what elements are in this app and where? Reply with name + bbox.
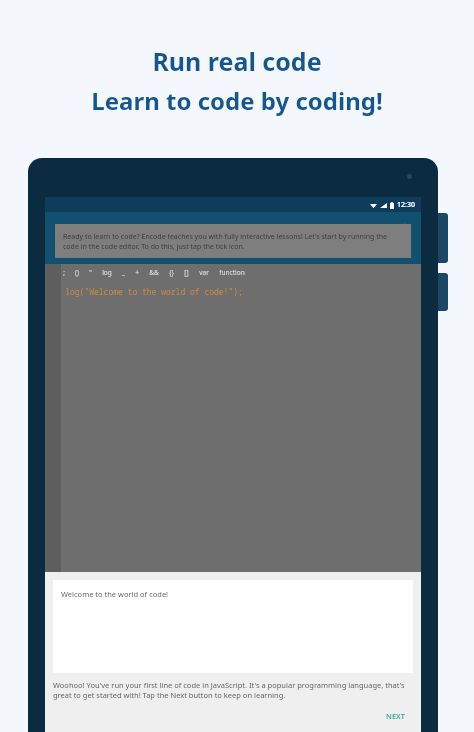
button[interactable]: Back <box>52 216 74 238</box>
staticText: " <box>89 268 92 277</box>
button[interactable]: var <box>199 268 209 277</box>
staticText: Lesson <box>81 220 117 235</box>
staticText: + <box>135 268 139 277</box>
button[interactable]: NEXT <box>378 708 413 724</box>
staticText: ; <box>63 268 65 277</box>
button[interactable]: log <box>102 268 112 277</box>
staticText: && <box>149 268 159 277</box>
button[interactable]: function <box>219 268 245 277</box>
staticText: Welcome to the world of code! <box>61 589 169 599</box>
staticText: Learn to code by coding! <box>91 84 383 117</box>
button[interactable]: More options <box>394 216 416 238</box>
staticText: Ready to learn to code? Encode teaches y… <box>63 232 403 251</box>
button[interactable]: _ <box>122 268 125 277</box>
button[interactable]: Ready to learn to code? Encode teaches y… <box>55 224 411 258</box>
staticText: _ <box>122 268 125 277</box>
staticText: NEXT <box>386 711 405 721</box>
staticText: {} <box>169 268 174 277</box>
staticText: Run real code <box>152 44 322 78</box>
staticText: function <box>219 268 245 277</box>
staticText: log <box>102 268 112 277</box>
staticText: log("Welcome to the world of code!"); <box>65 286 243 297</box>
button[interactable]: [] <box>184 268 189 277</box>
staticText: () <box>75 268 79 277</box>
button[interactable]: {} <box>169 268 174 277</box>
button[interactable]: ; <box>63 268 65 277</box>
button[interactable]: () <box>75 268 79 277</box>
staticText: var <box>199 268 209 277</box>
button[interactable]: && <box>149 268 159 277</box>
button[interactable]: NEXT <box>53 708 413 724</box>
button[interactable]: " <box>89 268 92 277</box>
button[interactable]: + <box>135 268 139 277</box>
staticText: [] <box>184 268 189 277</box>
staticText: 12:30 <box>397 200 415 210</box>
staticText: Woohoo! You've run your first line of co… <box>53 680 413 700</box>
